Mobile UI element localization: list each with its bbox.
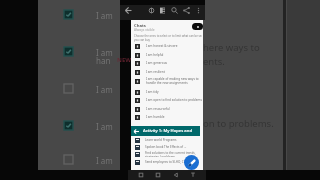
staticText: I am open to find solution to problems (146, 98, 202, 102)
staticText: Find solutions to the current trends, st… (145, 151, 196, 157)
staticText: I am (96, 121, 113, 132)
staticText: Activity 1: My Hopes and Fea (143, 128, 200, 134)
staticText: Send employees to SLHO, CLLB (145, 160, 189, 164)
button[interactable]: I am capable of making new ways to handl… (131, 77, 203, 85)
button[interactable]: I am tidy (131, 88, 203, 96)
button[interactable]: Home (154, 171, 162, 179)
staticText: Choose the ones to select or to limit wh… (134, 34, 202, 42)
button[interactable]: Toggle (192, 23, 203, 30)
button[interactable]: Share (182, 6, 191, 15)
staticText: I am helpful (146, 53, 164, 57)
staticText: Always visible (134, 28, 155, 32)
button[interactable]: I am (38, 155, 120, 177)
staticText: Learn world Programs (145, 138, 177, 142)
button[interactable]: Search (170, 6, 179, 15)
button[interactable]: I am (38, 84, 120, 106)
staticText: I am humble (146, 115, 165, 119)
staticText: I am honest & sincere (146, 44, 178, 48)
staticText: NEW (117, 56, 132, 64)
staticText: I am (96, 84, 113, 95)
staticText: I am (96, 10, 113, 21)
button[interactable]: Highlight (147, 6, 156, 15)
button[interactable]: Hide keyboard (189, 171, 197, 179)
button[interactable]: I am (38, 121, 120, 143)
staticText: on to problems. (203, 117, 274, 130)
button[interactable]: Back (124, 6, 133, 15)
button[interactable]: I am generous (131, 59, 203, 67)
button[interactable]: More options (194, 6, 203, 15)
button[interactable]: I am (38, 10, 120, 32)
staticText: Spoken book The Effects of ... (145, 145, 187, 149)
button[interactable]: I am open to find solution to problems (131, 96, 203, 104)
staticText: I am (96, 155, 113, 166)
staticText: I am generous (146, 61, 168, 65)
button[interactable]: Send employees to SLHO, CLLB (131, 159, 203, 165)
button[interactable]: Back (133, 128, 140, 135)
button[interactable]: Find solutions to the current trends, st… (131, 151, 203, 157)
button[interactable]: Text format (158, 6, 167, 15)
button[interactable]: I am humble (131, 113, 203, 121)
button[interactable]: I am helpful (131, 51, 203, 59)
button[interactable]: Spoken book The Effects of ... (131, 144, 203, 150)
staticText: Chats (134, 23, 146, 29)
button[interactable]: Edit (184, 155, 199, 170)
staticText: here ways to (203, 41, 260, 54)
button[interactable]: I am honest & sincere (131, 42, 203, 50)
staticText: I am resourceful (146, 107, 170, 111)
staticText: I am resilient (146, 70, 165, 74)
button[interactable]: Back (172, 171, 180, 179)
button[interactable]: I am resilient (131, 68, 203, 76)
staticText: I am han (96, 47, 113, 66)
button[interactable]: I am resourceful (131, 105, 203, 113)
button[interactable]: I am han (38, 47, 120, 69)
staticText: I am tidy (146, 90, 159, 94)
staticText: I am capable of making new ways to handl… (146, 77, 199, 85)
button[interactable]: Learn world Programs (131, 137, 203, 143)
button[interactable]: Recents (137, 171, 145, 179)
staticText: ents. (203, 55, 225, 68)
